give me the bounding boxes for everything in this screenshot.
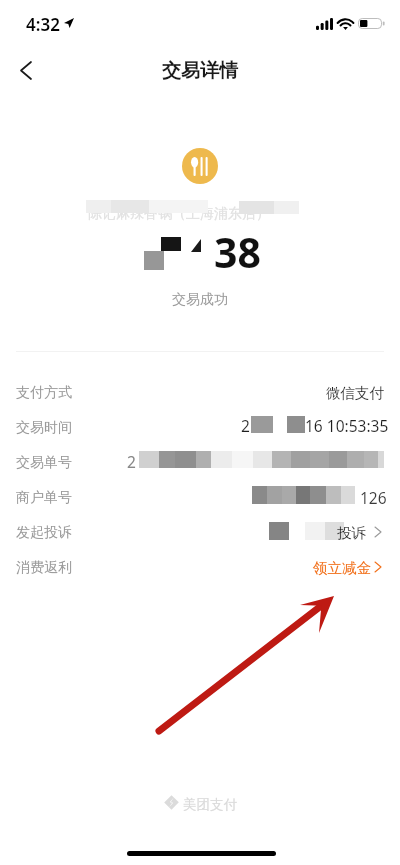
staticText: 投诉	[337, 524, 366, 542]
staticText: 消费返利	[16, 559, 72, 577]
staticText: 16 10:53:35	[305, 415, 389, 436]
staticText: 4:32	[26, 13, 60, 36]
staticText: 微信支付	[326, 384, 384, 402]
staticText: 交易详情	[0, 59, 400, 83]
staticText: 交易成功	[0, 291, 400, 309]
staticText: 支付方式	[16, 384, 72, 402]
button[interactable]: 消费返利	[0, 550, 400, 584]
staticText: 交易单号	[16, 454, 72, 472]
staticText: 38	[214, 224, 261, 280]
button[interactable]: 交易单号	[0, 445, 400, 479]
button[interactable]: Back	[8, 52, 44, 88]
staticText: 126	[360, 487, 387, 508]
staticText: 领立减金	[313, 559, 371, 577]
staticText: 2	[127, 451, 136, 472]
button[interactable]: 交易时间	[0, 410, 400, 444]
button[interactable]: 商户单号	[0, 480, 400, 514]
staticText: 发起投诉	[16, 524, 72, 542]
staticText: 美团支付	[183, 796, 237, 813]
staticText: 商户单号	[16, 489, 72, 507]
button[interactable]: 发起投诉	[0, 515, 400, 549]
button[interactable]: 支付方式	[0, 375, 400, 409]
staticText: 陈记麻辣香锅（上海浦东店）	[88, 205, 270, 223]
staticText: 交易时间	[16, 419, 72, 437]
staticText: 2	[241, 415, 250, 436]
